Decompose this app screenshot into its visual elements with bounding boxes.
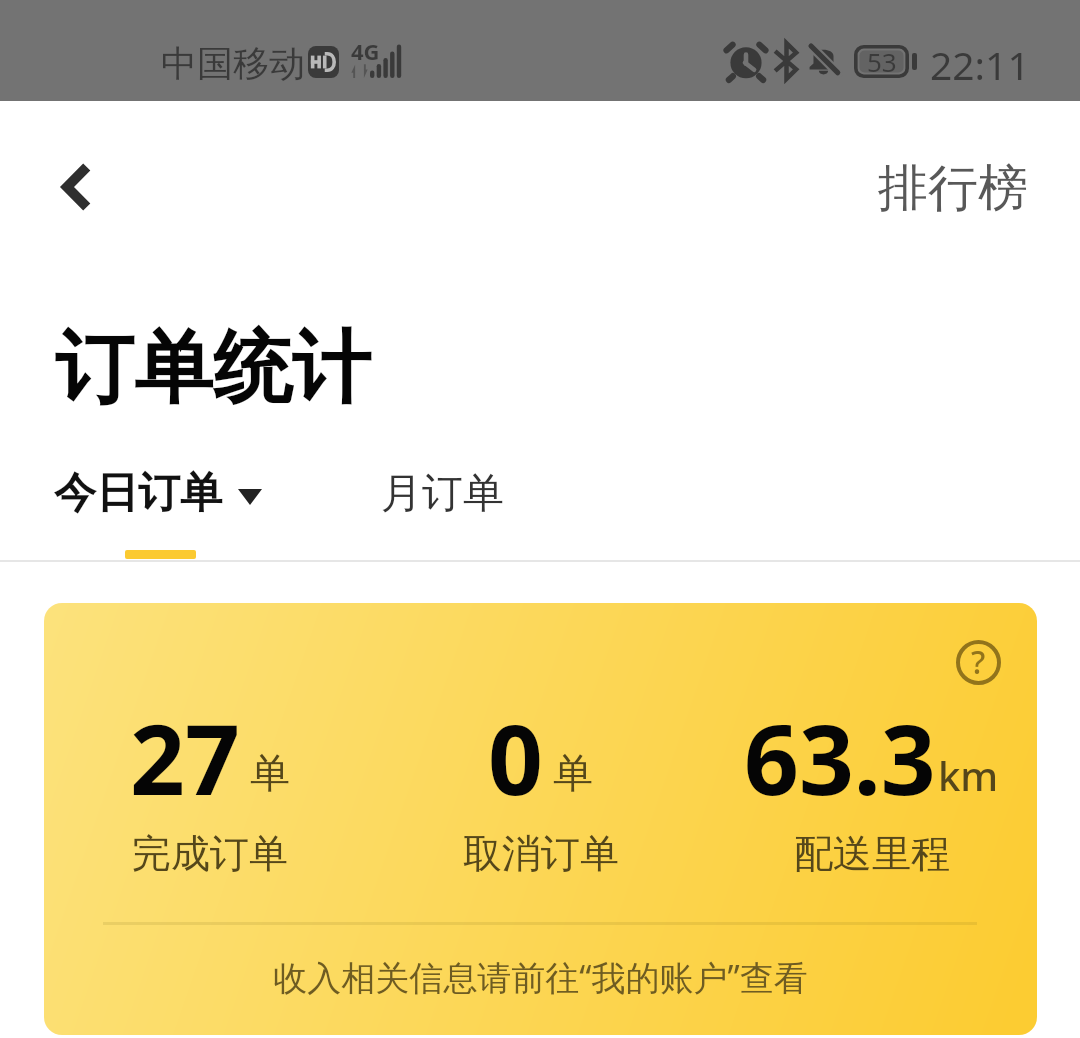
staticText: 22:11: [930, 38, 1030, 91]
staticText: 单: [553, 748, 593, 798]
staticText: 取消订单: [463, 829, 619, 878]
button[interactable]: 排行榜: [848, 151, 1058, 225]
button[interactable]: Help: [956, 640, 1001, 685]
staticText: 53: [867, 44, 897, 77]
staticText: 配送里程: [794, 829, 950, 878]
staticText: 63.3: [744, 692, 936, 823]
staticText: 0: [488, 692, 543, 823]
staticText: 今日订单: [54, 467, 222, 520]
staticText: 中国移动: [161, 41, 305, 86]
staticText: 4G: [351, 36, 380, 66]
staticText: 月订单: [381, 468, 504, 520]
staticText: 27: [130, 692, 240, 823]
staticText: 订单统计: [55, 319, 371, 419]
staticText: 单: [250, 748, 290, 798]
button[interactable]: 月订单: [381, 454, 504, 534]
button[interactable]: Help: [44, 603, 1037, 1035]
button[interactable]: Back: [34, 142, 124, 232]
staticText: 完成订单: [132, 829, 288, 878]
button[interactable]: 今日订单: [54, 453, 262, 534]
staticText: 排行榜: [878, 157, 1028, 220]
staticText: km: [938, 748, 999, 802]
staticText: ?: [971, 640, 986, 684]
staticText: 收入相关信息请前往“我的账户”查看: [44, 954, 1037, 1000]
